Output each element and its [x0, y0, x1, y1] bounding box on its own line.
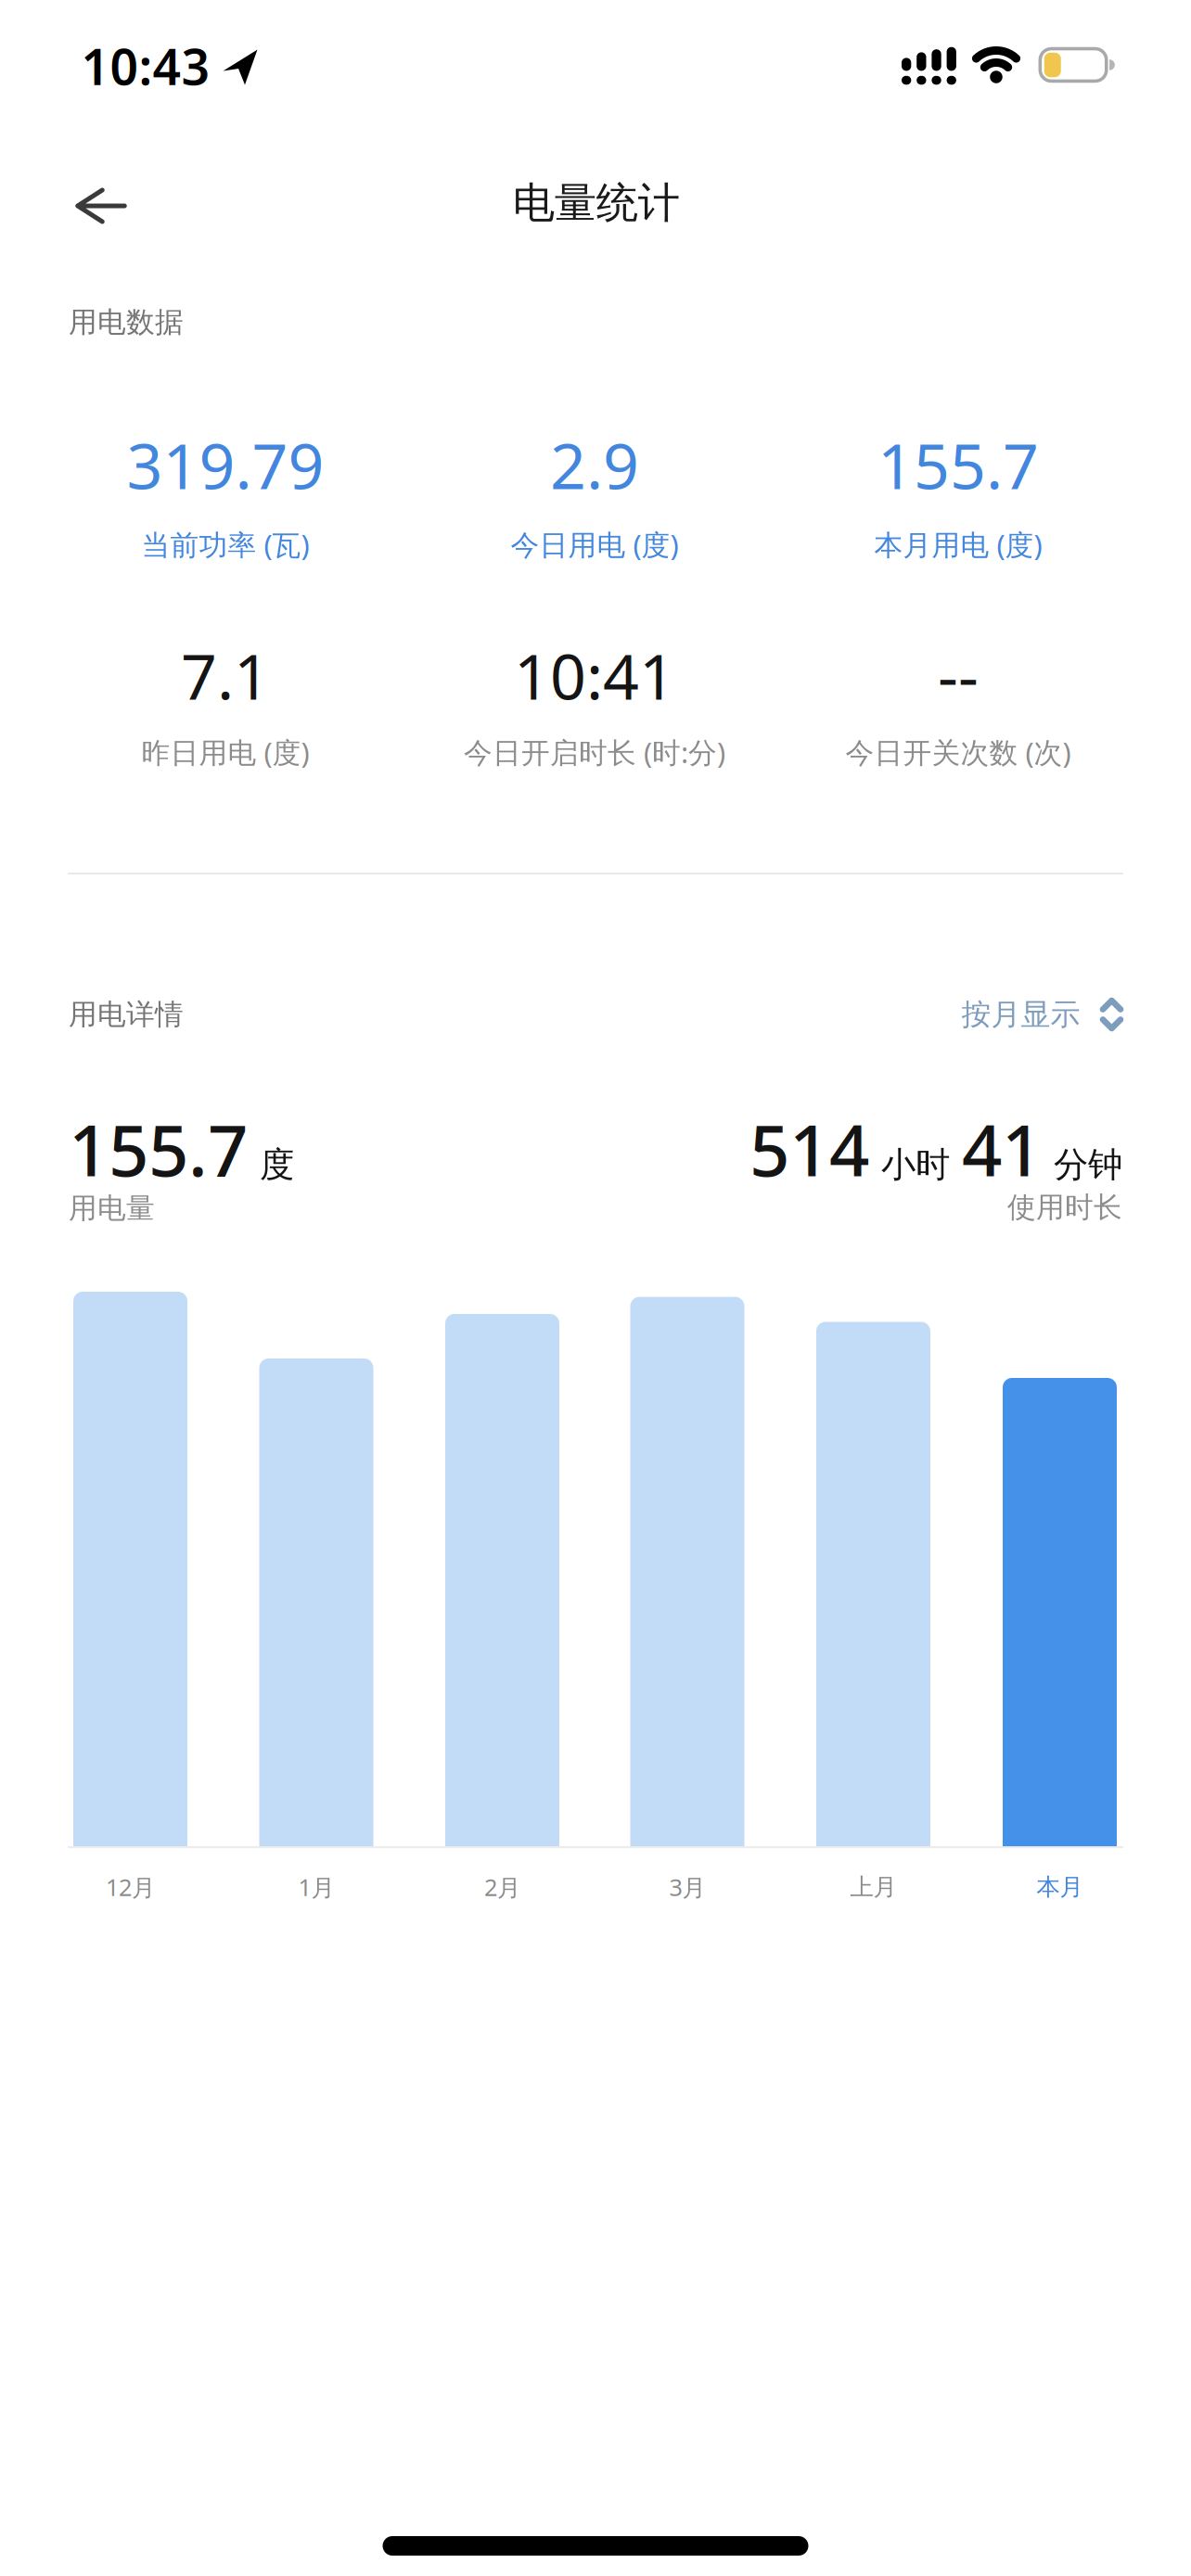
staticText: 上月 — [850, 1873, 896, 1901]
staticText: 本月用电 (度) — [874, 525, 1042, 563]
staticText: 用电详情 — [69, 997, 184, 1032]
staticText: 用电数据 — [69, 305, 184, 340]
staticText: 今日开启时长 (时:分) — [464, 733, 725, 771]
staticText: -- — [938, 633, 979, 717]
staticText: 今日用电 (度) — [511, 525, 679, 563]
staticText: 10:43 — [81, 33, 210, 99]
staticText: 10:41 — [514, 633, 675, 717]
staticText: 7.1 — [181, 633, 270, 717]
staticText: 319.79 — [127, 423, 324, 506]
staticText: 按月显示 — [961, 996, 1080, 1033]
staticText: 155.7 — [877, 423, 1039, 506]
staticText: 41 — [962, 1102, 1042, 1196]
staticText: 12月 — [106, 1871, 155, 1903]
staticText: 514 — [749, 1102, 869, 1196]
staticText: 昨日用电 (度) — [141, 733, 309, 771]
staticText: 度 — [260, 1143, 294, 1186]
staticText: 分钟 — [1054, 1143, 1122, 1186]
staticText: 小时 — [881, 1143, 950, 1186]
staticText: 用电量 — [69, 1191, 155, 1226]
staticText: 本月 — [1037, 1873, 1083, 1901]
staticText: 1月 — [298, 1871, 334, 1903]
button[interactable]: 按月显示 — [961, 996, 1124, 1033]
staticText: 当前功率 (瓦) — [141, 525, 309, 563]
staticText: 155.7 — [69, 1102, 248, 1196]
staticText: 今日开关次数 (次) — [845, 733, 1071, 771]
staticText: 2.9 — [550, 423, 639, 506]
staticText: 2月 — [484, 1871, 520, 1903]
staticText: 使用时长 — [1007, 1190, 1122, 1225]
button[interactable]: Back — [55, 164, 147, 248]
staticText: 3月 — [669, 1871, 705, 1903]
staticText: 电量统计 — [513, 177, 680, 229]
